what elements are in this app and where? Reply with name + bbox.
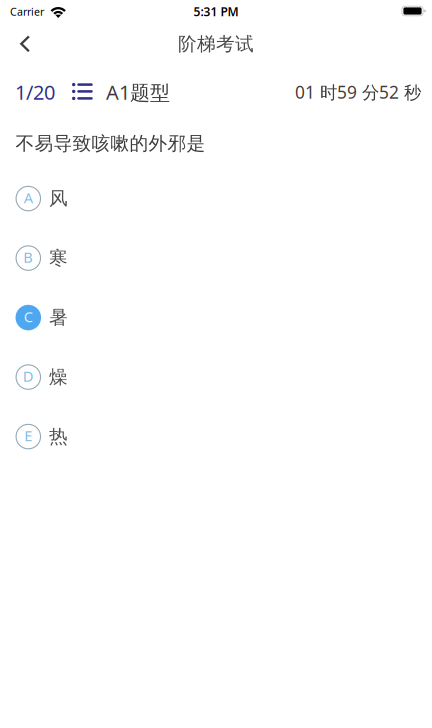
staticText: 风: [49, 187, 68, 210]
staticText: A: [24, 188, 33, 207]
button[interactable]: Back: [6, 28, 44, 60]
button[interactable]: C: [0, 288, 432, 347]
staticText: A1题型: [106, 79, 170, 105]
staticText: 热: [49, 425, 68, 448]
button[interactable]: 1/20: [15, 79, 170, 105]
staticText: 燥: [49, 366, 68, 388]
staticText: Carrier: [10, 4, 44, 19]
staticText: B: [23, 247, 33, 267]
staticText: C: [24, 307, 33, 326]
button[interactable]: B: [0, 228, 432, 288]
button[interactable]: E: [0, 407, 432, 466]
staticText: 1/20: [15, 79, 55, 105]
button[interactable]: A: [0, 169, 432, 228]
staticText: 寒: [49, 247, 68, 269]
staticText: 不易导致咳嗽的外邪是: [15, 132, 205, 155]
button[interactable]: D: [0, 347, 432, 407]
staticText: D: [23, 366, 34, 386]
staticText: 5:31 PM: [193, 3, 238, 19]
staticText: 暑: [49, 306, 68, 329]
staticText: 阶梯考试: [178, 32, 254, 55]
staticText: 01 时59 分52 秒: [295, 80, 421, 103]
staticText: E: [24, 426, 32, 445]
